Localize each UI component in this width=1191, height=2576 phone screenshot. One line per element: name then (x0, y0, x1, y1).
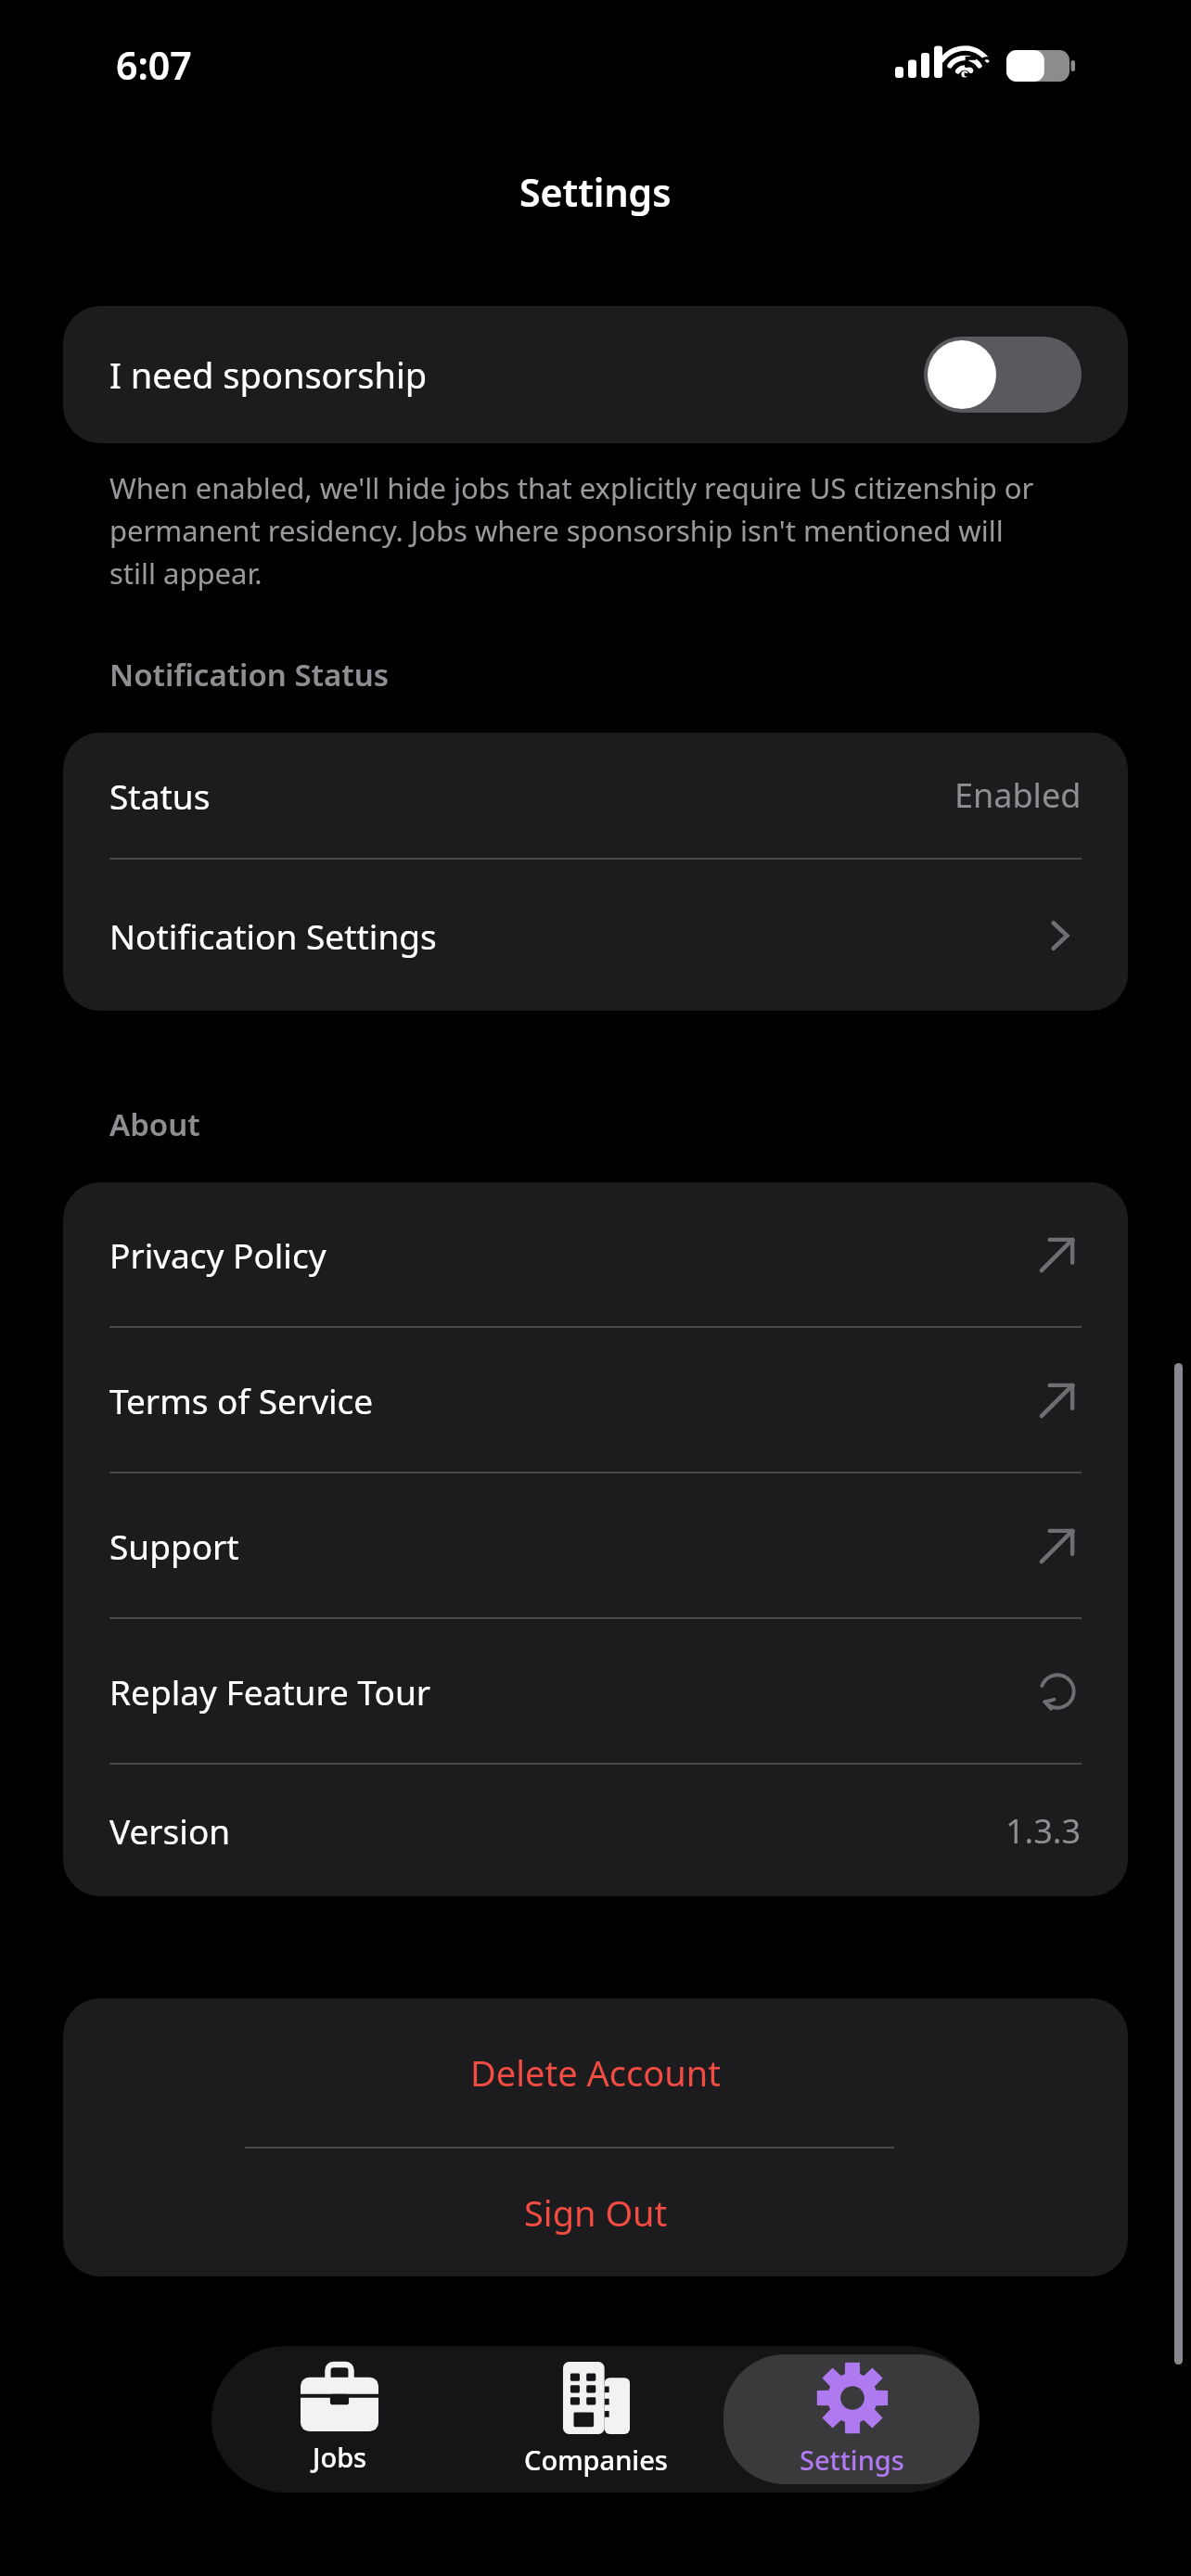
staticText: 6:07 (116, 39, 192, 91)
staticText: Settings (800, 2442, 904, 2478)
staticText: Enabled (954, 772, 1082, 818)
staticText: Status (109, 772, 211, 819)
staticText: Notification Settings (109, 912, 437, 959)
staticText: Notification Status (109, 654, 390, 695)
button[interactable]: Support (63, 1473, 1128, 1617)
staticText: Settings (519, 166, 672, 218)
other: Open Support (1033, 1522, 1082, 1570)
button[interactable]: Companies (467, 2346, 724, 2493)
other: Open Privacy Policy (1033, 1231, 1082, 1279)
staticText: Sign Out (524, 2188, 668, 2237)
staticText: Replay Feature Tour (109, 1668, 431, 1715)
other: Open notification settings (1039, 914, 1082, 957)
other: Replay feature tour (1033, 1667, 1082, 1715)
button[interactable]: Version (63, 1765, 1128, 1896)
button[interactable]: Settings (724, 2354, 980, 2484)
button[interactable]: Replay Feature Tour (63, 1619, 1128, 1763)
button[interactable]: Sign Out (63, 2149, 1128, 2276)
staticText: Delete Account (470, 2048, 721, 2097)
staticText: Terms of Service (109, 1377, 374, 1423)
button[interactable]: Status (63, 733, 1128, 858)
staticText: Jobs (313, 2439, 367, 2475)
button[interactable]: Delete Account (63, 1998, 1128, 2147)
other: Open Terms of Service (1033, 1376, 1082, 1424)
button[interactable]: Notification Settings (63, 860, 1128, 1011)
staticText: 58 (963, 47, 995, 85)
staticText: I need sponsorship (109, 351, 428, 399)
button[interactable]: Jobs (211, 2346, 467, 2493)
staticText: 1.3.3 (1005, 1808, 1082, 1854)
staticText: Privacy Policy (109, 1231, 327, 1278)
button[interactable]: Terms of Service (63, 1328, 1128, 1472)
staticText: Support (109, 1523, 239, 1569)
button[interactable]: I need sponsorship toggle (924, 337, 1082, 413)
staticText: About (109, 1103, 200, 1145)
staticText: When enabled, we'll hide jobs that expli… (109, 468, 1046, 593)
staticText: Version (109, 1807, 231, 1854)
staticText: Companies (524, 2442, 668, 2478)
button[interactable]: Privacy Policy (63, 1182, 1128, 1326)
button[interactable]: I need sponsorship (63, 306, 1128, 443)
